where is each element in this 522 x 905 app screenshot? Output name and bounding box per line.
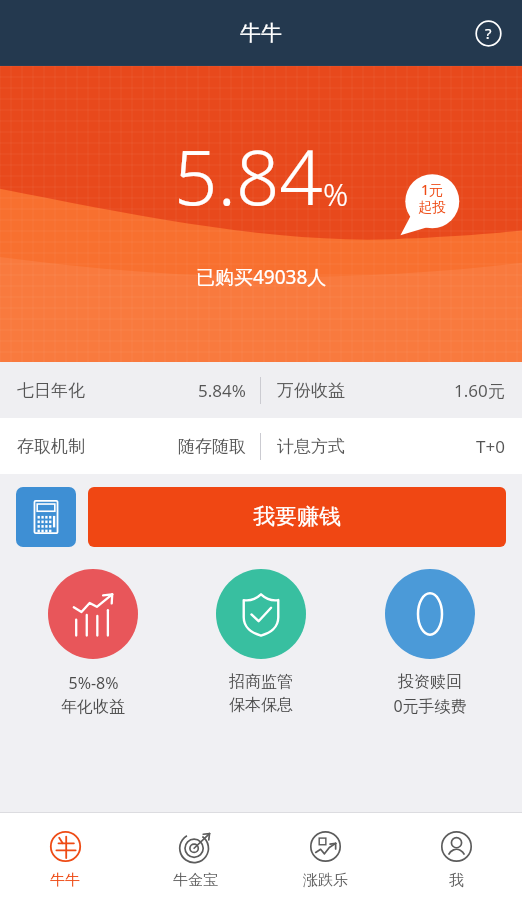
button[interactable]: 牛牛	[0, 813, 130, 905]
button[interactable]: 投资赎回	[354, 569, 506, 717]
button[interactable]: Calculator	[16, 487, 76, 547]
staticText: 1元	[421, 180, 444, 199]
button[interactable]: 我	[391, 813, 522, 905]
button[interactable]: 牛金宝	[130, 813, 260, 905]
button[interactable]: Help	[466, 11, 510, 55]
staticText: 随存随取	[178, 436, 246, 457]
staticText: 1.60元	[454, 379, 505, 402]
button[interactable]: 我要赚钱	[88, 487, 506, 547]
staticText: 0元手续费	[393, 695, 467, 717]
staticText: 5.84	[174, 124, 323, 228]
staticText: 投资赎回	[398, 672, 462, 692]
staticText: 年化收益	[61, 697, 125, 717]
staticText: 招商监管	[229, 672, 293, 692]
staticText: 我要赚钱	[253, 503, 341, 531]
button[interactable]: 招商监管	[185, 569, 337, 715]
staticText: ?	[485, 23, 492, 43]
staticText: 我	[449, 871, 464, 890]
staticText: 牛牛	[50, 871, 80, 890]
staticText: 存取机制	[17, 436, 85, 457]
staticText: T+0	[476, 435, 505, 458]
staticText: %	[323, 173, 349, 215]
staticText: 万份收益	[277, 380, 345, 401]
staticText: 牛牛	[240, 20, 282, 46]
staticText: 保本保息	[229, 695, 293, 715]
staticText: 涨跌乐	[303, 871, 348, 890]
staticText: 5.84%	[198, 379, 246, 402]
button[interactable]: 1元	[392, 167, 468, 243]
staticText: 计息方式	[277, 436, 345, 457]
staticText: 七日年化	[17, 380, 85, 401]
button[interactable]: 涨跌乐	[260, 813, 391, 905]
button[interactable]: 5%-8%	[17, 569, 169, 717]
staticText: 5%-8%	[68, 672, 119, 694]
staticText: 起投	[418, 199, 446, 217]
staticText: 已购买49038人	[196, 264, 327, 290]
staticText: 牛金宝	[173, 871, 218, 890]
